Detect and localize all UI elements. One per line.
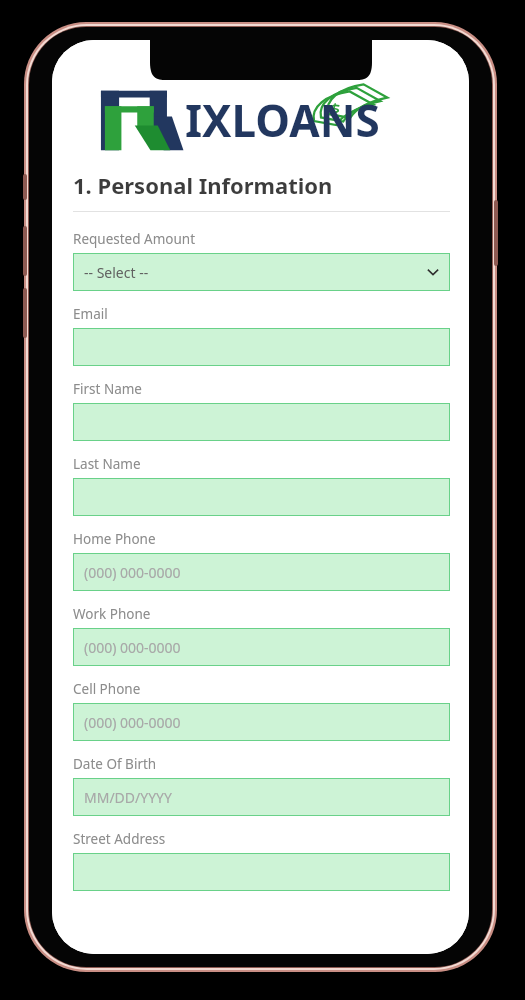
staticText: Email	[73, 305, 108, 323]
staticText: Work Phone	[73, 605, 151, 623]
staticText: 1. Personal Information	[73, 170, 333, 200]
staticText: MM/DD/YYYY	[84, 788, 439, 807]
other: RixLoans logo	[96, 87, 426, 151]
staticText: (000) 000-0000	[84, 638, 439, 657]
button[interactable]: (000) 000-0000	[73, 553, 450, 591]
staticText: Cell Phone	[73, 680, 141, 698]
staticText: Last Name	[73, 455, 141, 473]
button[interactable]: MM/DD/YYYY	[73, 778, 450, 816]
button[interactable]: -- Select --	[73, 253, 450, 291]
staticText: (000) 000-0000	[84, 563, 439, 582]
staticText: Date Of Birth	[73, 755, 157, 773]
staticText: (000) 000-0000	[84, 713, 439, 732]
staticText: Home Phone	[73, 530, 156, 548]
button[interactable]	[73, 403, 450, 441]
button[interactable]	[73, 853, 450, 891]
staticText: -- Select --	[84, 263, 427, 282]
staticText: IXLOANS	[185, 90, 380, 150]
staticText: Requested Amount	[73, 230, 196, 248]
button[interactable]: (000) 000-0000	[73, 703, 450, 741]
button[interactable]	[73, 478, 450, 516]
button[interactable]: (000) 000-0000	[73, 628, 450, 666]
button[interactable]	[73, 328, 450, 366]
staticText: First Name	[73, 380, 142, 398]
staticText: Street Address	[73, 830, 166, 848]
